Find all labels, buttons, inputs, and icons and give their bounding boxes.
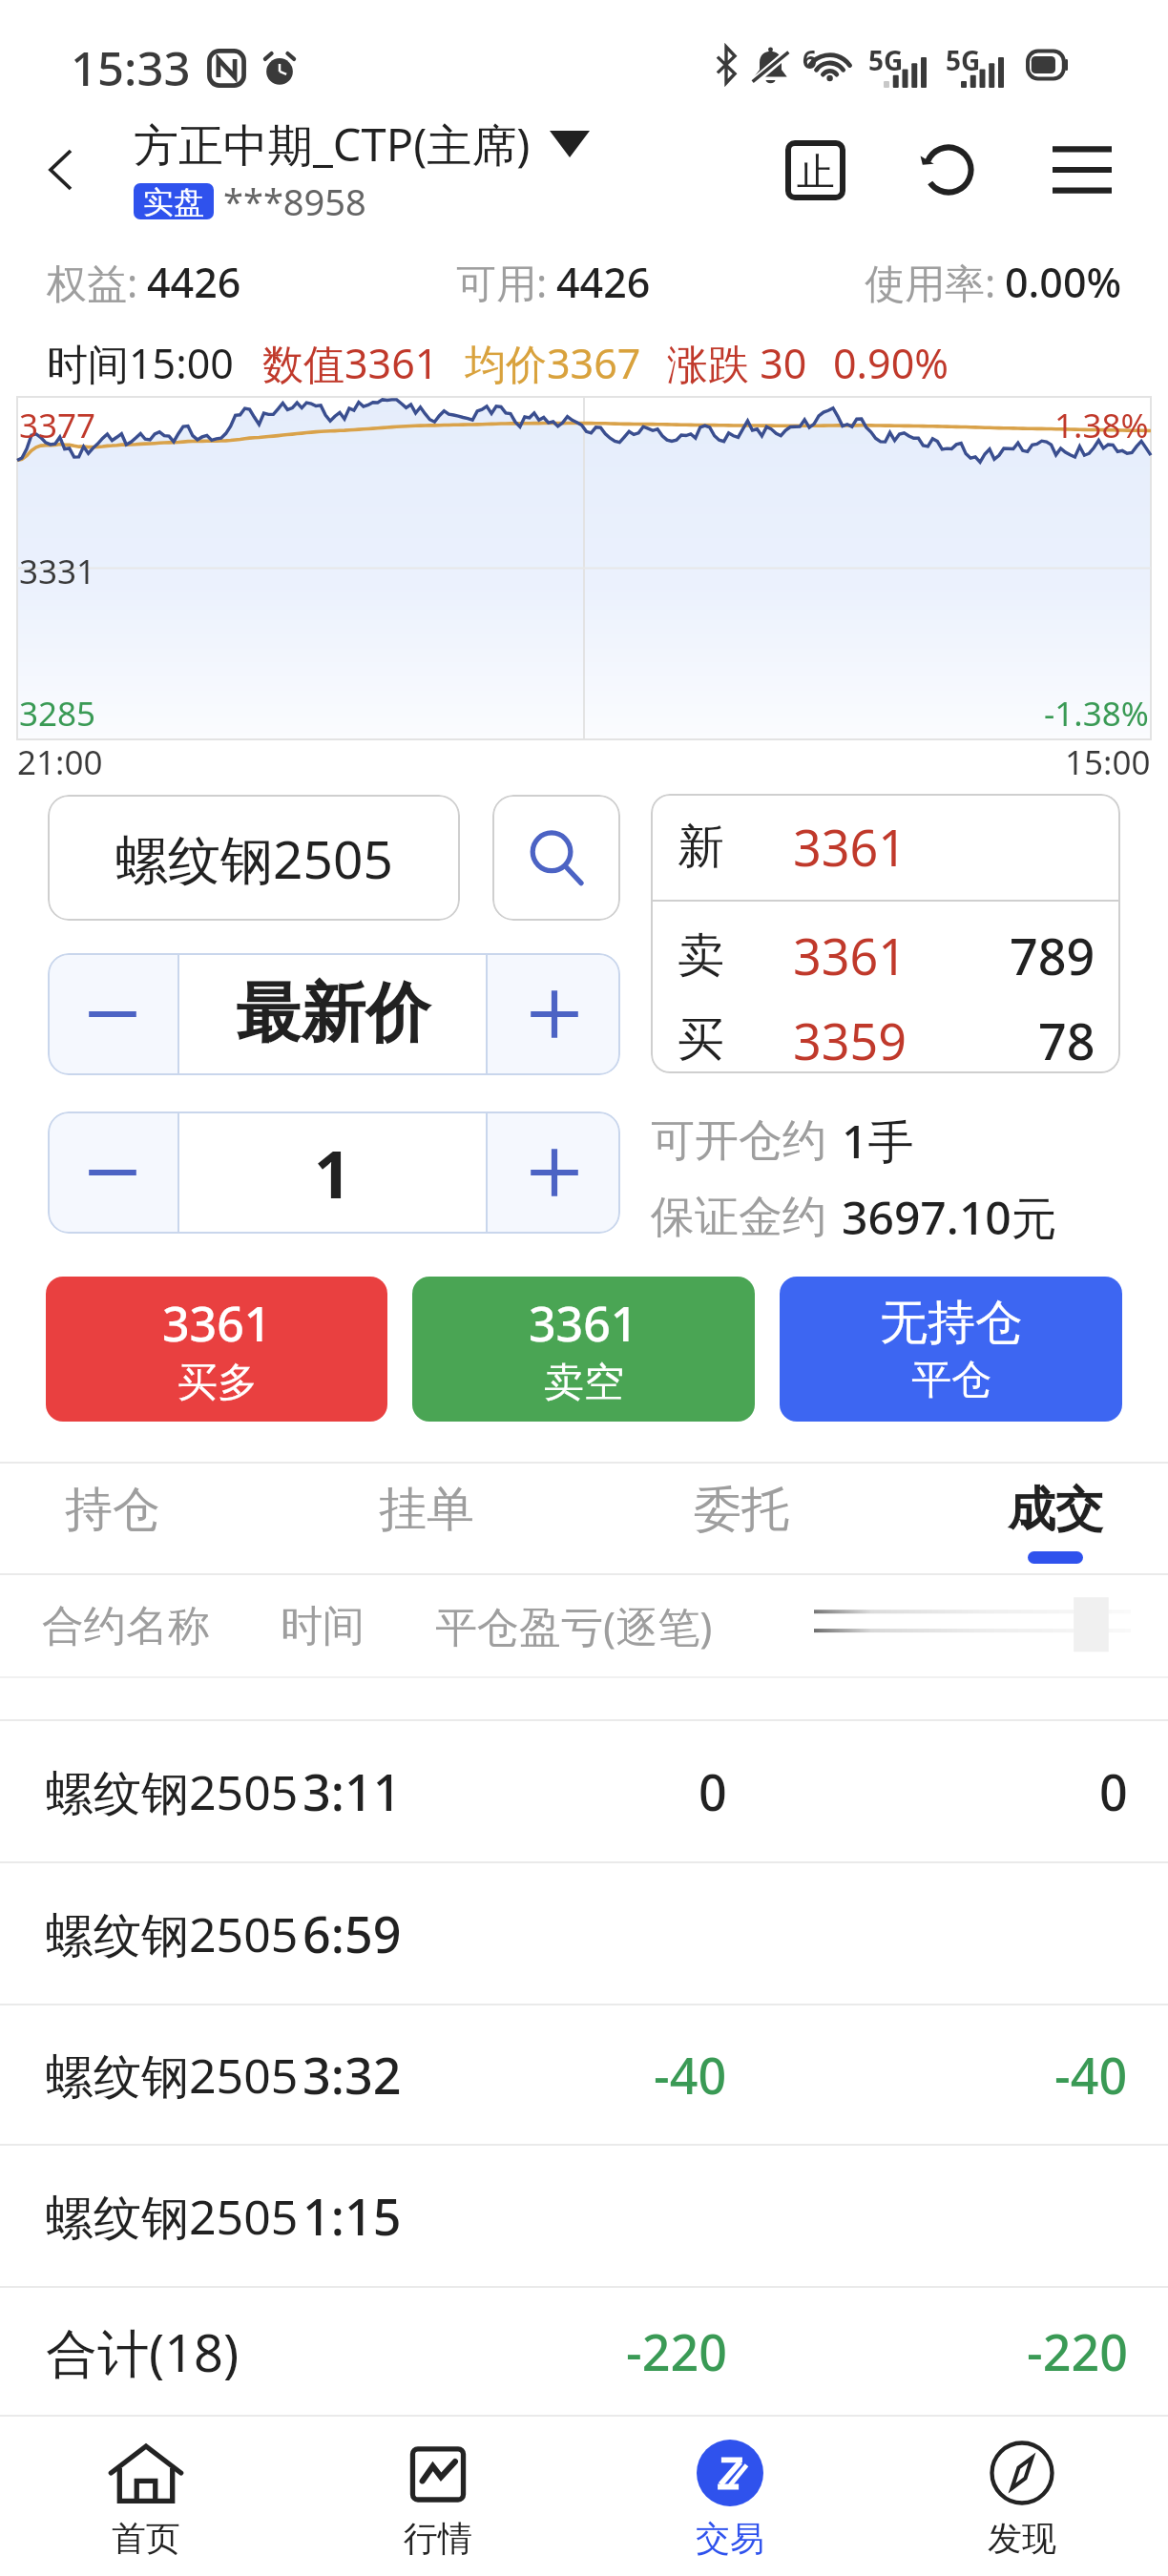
staticText: 行情 [404, 2517, 472, 2560]
staticText: 1 [314, 1129, 351, 1217]
button[interactable]: 委托 [694, 1464, 789, 1573]
staticText: 持仓 [65, 1480, 160, 1540]
button[interactable]: 螺纹钢2505 [0, 2146, 1168, 2286]
staticText: 卖空 [544, 1358, 624, 1408]
staticText: 4426 [556, 254, 651, 310]
button[interactable]: 螺纹钢2505 [0, 1863, 1168, 2004]
staticText: 新 [678, 818, 724, 877]
staticText: 平仓 [911, 1355, 991, 1405]
staticText: 权益: [47, 255, 138, 309]
staticText: 最新价 [236, 973, 430, 1055]
staticText: 15:00 [1065, 739, 1151, 785]
button[interactable]: 挂单 [379, 1464, 474, 1573]
button[interactable]: Stop loss [772, 127, 858, 213]
staticText: 15:33 [71, 36, 191, 100]
staticText: 螺纹钢2505 [46, 2184, 299, 2249]
staticText: 6:59 [302, 1900, 402, 1967]
staticText: 21:00 [17, 739, 103, 785]
button[interactable]: 螺纹钢2505 [0, 2005, 1168, 2144]
staticText: 使用率: [865, 255, 996, 309]
staticText: -40 [1054, 2041, 1128, 2109]
staticText: 止 [797, 148, 835, 196]
staticText: 6 [803, 42, 817, 75]
staticText: ***8958 [223, 177, 366, 226]
staticText: 螺纹钢2505 [46, 1901, 299, 1966]
button[interactable]: 无持仓 [780, 1277, 1122, 1422]
button[interactable]: 行情 [292, 2417, 584, 2576]
staticText: 涨跌 30 [667, 335, 807, 391]
staticText: 5G [946, 42, 981, 78]
staticText: 委托 [694, 1480, 789, 1540]
button[interactable]: 螺纹钢2505 [0, 1721, 1168, 1861]
staticText: 4426 [147, 254, 241, 310]
staticText: 平仓盈亏(逐笔) [435, 1597, 713, 1654]
staticText: 3:11 [302, 1757, 402, 1825]
staticText: 1手 [842, 1110, 914, 1173]
staticText: -220 [626, 2317, 727, 2385]
staticText: 3361 [529, 1291, 638, 1356]
staticText: 可开仓约 [651, 1113, 826, 1169]
staticText: 3359 [793, 1007, 907, 1073]
button[interactable]: 螺纹钢2505 [48, 795, 460, 921]
button[interactable]: Decrease [48, 1111, 177, 1234]
button[interactable]: 3361 [412, 1277, 755, 1422]
staticText: 3697.10元 [842, 1186, 1057, 1249]
staticText: 3361 [162, 1291, 272, 1356]
staticText: 方正中期_CTP(主席) [134, 114, 531, 175]
staticText: 合约名称 [42, 1600, 210, 1652]
button[interactable]: Menu [1039, 127, 1125, 213]
staticText: 首页 [112, 2517, 180, 2560]
staticText: 时间15:00 [47, 335, 234, 391]
staticText: 789 [1010, 922, 1095, 989]
staticText: 保证金约 [651, 1190, 826, 1245]
staticText: -40 [654, 2041, 727, 2109]
staticText: 成交 [1008, 1480, 1103, 1540]
staticText: 买 [678, 1010, 724, 1070]
button[interactable]: 交易 [584, 2417, 876, 2576]
button[interactable]: Increase [488, 1111, 620, 1234]
staticText: 卖 [678, 926, 724, 986]
staticText: 数值3361 [262, 335, 439, 391]
staticText: 螺纹钢2505 [46, 1759, 299, 1824]
button[interactable]: Back [23, 132, 99, 208]
staticText: 78 [1038, 1007, 1095, 1073]
staticText: -220 [1027, 2317, 1128, 2385]
staticText: 均价3367 [465, 335, 641, 391]
staticText: 0 [1099, 1757, 1128, 1825]
staticText: 发现 [988, 2517, 1056, 2560]
button[interactable]: Refresh [906, 127, 991, 213]
staticText: 3361 [793, 922, 907, 989]
staticText: 挂单 [379, 1480, 474, 1540]
staticText: 3331 [19, 549, 96, 594]
staticText: 交易 [696, 2517, 764, 2560]
staticText: 0.00% [1005, 254, 1122, 310]
button[interactable]: 持仓 [65, 1464, 160, 1573]
staticText: 0.90% [833, 335, 949, 391]
staticText: 合计(18) [46, 2316, 240, 2387]
staticText: 螺纹钢2505 [46, 2043, 299, 2108]
staticText: 0 [699, 1757, 727, 1825]
staticText: 1:15 [302, 2182, 402, 2250]
button[interactable]: 首页 [0, 2417, 292, 2576]
button[interactable]: 发现 [876, 2417, 1168, 2576]
staticText: 5G [868, 42, 904, 78]
staticText: 无持仓 [880, 1293, 1023, 1353]
staticText: 3285 [19, 691, 96, 737]
staticText: 3361 [793, 813, 907, 881]
staticText: -1.38% [1044, 691, 1149, 737]
staticText: 时间 [281, 1600, 365, 1652]
staticText: 可用: [456, 255, 548, 309]
staticText: 3377 [19, 403, 96, 448]
staticText: 螺纹钢2505 [115, 822, 393, 894]
staticText: 实盘 [143, 183, 204, 219]
staticText: 1.38% [1054, 403, 1149, 448]
button[interactable]: 3361 [46, 1277, 387, 1422]
button[interactable]: 成交 [1008, 1464, 1103, 1573]
button[interactable]: Decrease [48, 953, 177, 1075]
staticText: 3:32 [302, 2041, 402, 2109]
button[interactable]: Search [492, 795, 620, 921]
button[interactable]: Increase [488, 953, 620, 1075]
staticText: 买多 [177, 1358, 258, 1408]
